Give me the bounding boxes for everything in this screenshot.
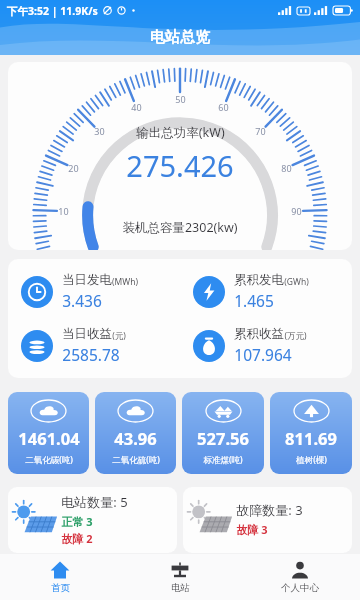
staticText: 50 bbox=[175, 93, 186, 105]
button[interactable]: 累积收益 bbox=[180, 326, 352, 365]
staticText: 20 bbox=[68, 162, 79, 174]
button[interactable]: 累积发电 bbox=[180, 272, 352, 311]
staticText: 故障 2 bbox=[61, 531, 93, 546]
staticText: 2585.78 bbox=[62, 344, 120, 365]
staticText: 标准煤(吨) bbox=[203, 454, 243, 466]
button[interactable]: 1461.04 bbox=[8, 392, 89, 474]
staticText: 70 bbox=[255, 125, 266, 137]
staticText: 二氧化碳(吨) bbox=[25, 454, 73, 466]
staticText: 107.964 bbox=[234, 344, 292, 365]
button[interactable]: 首页 bbox=[0, 554, 120, 600]
staticText: 40 bbox=[131, 101, 142, 113]
staticText: 43.96 bbox=[114, 427, 157, 449]
staticText: 3.436 bbox=[62, 290, 102, 311]
button[interactable]: 811.69 bbox=[270, 392, 352, 474]
staticText: (万元) bbox=[284, 330, 307, 342]
button[interactable]: 电站 bbox=[120, 554, 240, 600]
staticText: (MWh) bbox=[112, 276, 138, 288]
staticText: 故障数量: 3 bbox=[236, 501, 303, 519]
button[interactable]: 当日收益 bbox=[8, 326, 180, 365]
staticText: 1.465 bbox=[234, 290, 274, 311]
button[interactable]: 当日发电 bbox=[8, 272, 180, 311]
staticText: 60 bbox=[218, 101, 229, 113]
staticText: 植树(棵) bbox=[296, 454, 327, 466]
staticText: 30 bbox=[94, 125, 105, 137]
staticText: 275.426 bbox=[126, 146, 234, 185]
staticText: 个人中心 bbox=[281, 582, 319, 594]
staticText: 当日收益 bbox=[62, 326, 112, 342]
staticText: (GWh) bbox=[284, 276, 309, 288]
staticText: (元) bbox=[112, 330, 126, 342]
staticText: 80 bbox=[281, 162, 292, 174]
button[interactable]: 527.56 bbox=[182, 392, 264, 474]
staticText: 90 bbox=[291, 205, 302, 217]
staticText: 电站总览 bbox=[150, 28, 210, 47]
staticText: 10 bbox=[58, 205, 69, 217]
staticText: 正常 3 bbox=[61, 514, 93, 529]
staticText: 811.69 bbox=[285, 427, 337, 449]
button[interactable]: 个人中心 bbox=[240, 554, 360, 600]
staticText: 装机总容量2302(kw) bbox=[122, 219, 238, 236]
button[interactable]: 43.96 bbox=[95, 392, 176, 474]
staticText: 电站 bbox=[171, 582, 190, 594]
staticText: 输出总功率(kW) bbox=[136, 124, 225, 141]
staticText: 下午3:52 | 11.9K/s bbox=[7, 4, 98, 18]
staticText: 1461.04 bbox=[18, 427, 80, 449]
staticText: 累积收益 bbox=[234, 326, 284, 342]
staticText: 二氧化硫(吨) bbox=[112, 454, 160, 466]
button[interactable]: 故障数量: 3 bbox=[183, 487, 352, 553]
staticText: 电站数量: 5 bbox=[61, 493, 128, 511]
staticText: 首页 bbox=[51, 582, 70, 594]
staticText: 累积发电 bbox=[234, 272, 284, 288]
staticText: 527.56 bbox=[197, 427, 249, 449]
button[interactable]: 电站数量: 5 bbox=[8, 487, 177, 553]
staticText: 当日发电 bbox=[62, 272, 112, 288]
staticText: 故障 3 bbox=[236, 522, 268, 537]
